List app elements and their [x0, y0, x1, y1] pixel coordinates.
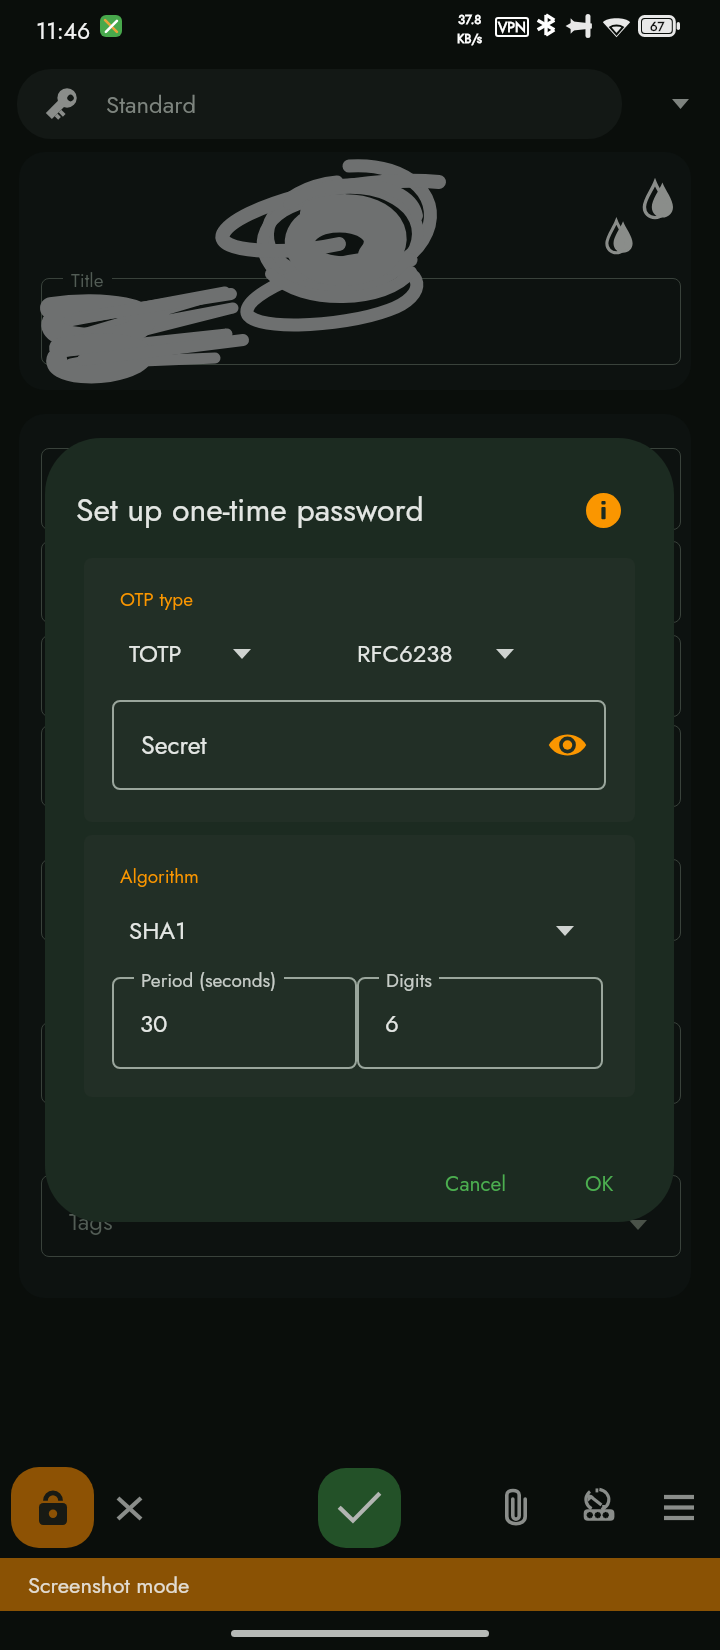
staticText: VPN	[498, 17, 526, 37]
button[interactable]	[112, 977, 357, 1069]
button[interactable]: More options	[655, 1483, 703, 1531]
staticText: TOTP	[129, 636, 182, 671]
button[interactable]	[41, 725, 681, 807]
staticText: Tags	[69, 1204, 113, 1239]
staticText: OK	[585, 1169, 614, 1199]
button[interactable]: TOTP	[129, 636, 251, 671]
button[interactable]: Info	[586, 493, 621, 528]
button[interactable]: Secret	[112, 700, 606, 790]
staticText: 37.8	[458, 10, 482, 29]
staticText: SHA1	[129, 913, 186, 948]
button[interactable]: Show secret	[544, 722, 590, 768]
button[interactable]: Generate password	[574, 1481, 622, 1529]
button[interactable]: Standard	[17, 69, 622, 139]
button[interactable]: Expand vault selector	[672, 99, 716, 137]
button[interactable]: OK	[569, 1155, 630, 1213]
button[interactable]: SHA1	[129, 913, 574, 948]
staticText: Screenshot mode	[28, 1569, 190, 1601]
staticText: 6	[385, 1006, 399, 1041]
staticText: Secret	[141, 727, 207, 763]
button[interactable]	[41, 859, 681, 941]
staticText: Algorithm	[120, 863, 199, 890]
button[interactable]: Discard	[105, 1484, 153, 1532]
staticText: Standard	[106, 87, 197, 122]
button[interactable]	[41, 541, 681, 623]
staticText: 30	[140, 1006, 168, 1041]
staticText: Cancel	[445, 1169, 507, 1199]
staticText: 67	[650, 17, 665, 36]
button[interactable]	[41, 1175, 681, 1257]
button[interactable]: Lock vault	[11, 1467, 94, 1548]
staticText: Title	[71, 267, 104, 294]
staticText: 11:46	[36, 14, 91, 47]
staticText: Digits	[386, 967, 432, 994]
button[interactable]: Save	[318, 1468, 401, 1548]
button[interactable]	[41, 278, 681, 365]
button[interactable]: Cancel	[429, 1155, 523, 1213]
button[interactable]	[41, 448, 681, 530]
staticText: Set up one-time password	[76, 487, 424, 533]
button[interactable]	[41, 635, 681, 717]
staticText: Period (seconds)	[141, 967, 277, 994]
button[interactable]	[41, 1022, 681, 1104]
button[interactable]: Attach file	[492, 1483, 540, 1531]
staticText: RFC6238	[357, 636, 453, 671]
staticText: KB/s	[457, 29, 483, 48]
button[interactable]: RFC6238	[357, 636, 514, 671]
staticText: OTP type	[120, 586, 193, 613]
button[interactable]	[357, 977, 603, 1069]
